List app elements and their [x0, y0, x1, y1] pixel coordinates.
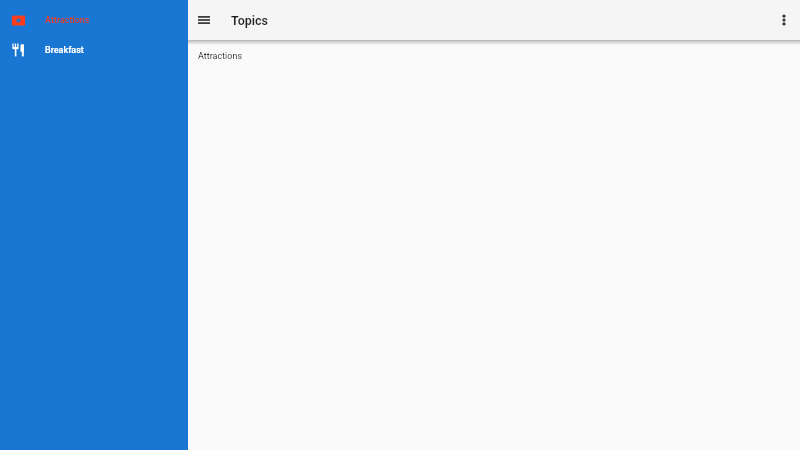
button[interactable]: More options	[768, 4, 800, 36]
staticText: Topics	[231, 13, 269, 28]
staticText: Attractions	[45, 15, 90, 26]
button[interactable]: Breakfast	[0, 35, 188, 65]
button[interactable]: Open navigation drawer	[188, 4, 220, 36]
button[interactable]: Attractions	[0, 5, 188, 35]
staticText: Attractions	[198, 51, 243, 62]
staticText: Breakfast	[45, 45, 84, 56]
